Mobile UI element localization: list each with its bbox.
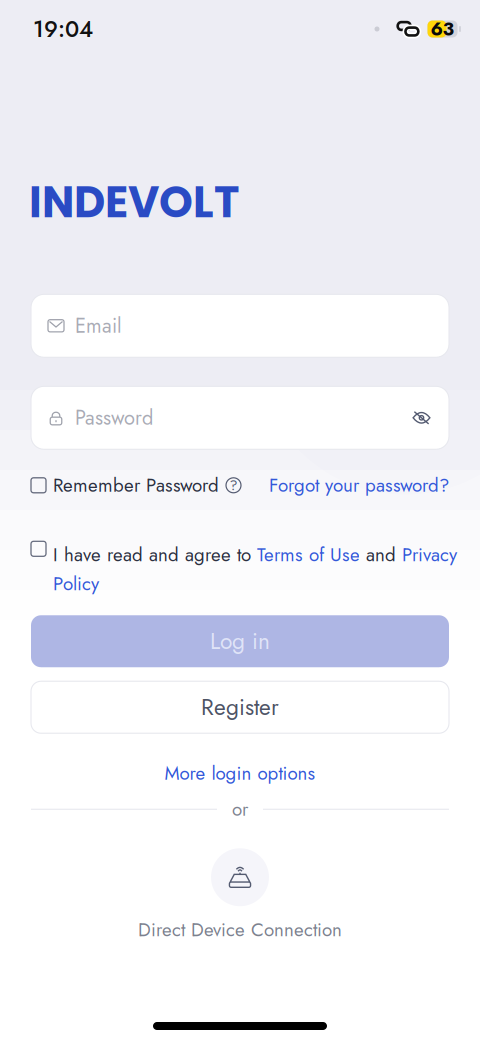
staticText: 19:04 <box>33 13 93 45</box>
staticText: Direct Device Connection <box>138 916 342 943</box>
staticText: 63 <box>430 15 454 42</box>
staticText: Password <box>75 403 153 432</box>
staticText: I have read and agree to Terms of Use an… <box>53 541 457 568</box>
staticText: or <box>232 796 248 823</box>
button[interactable]: Direct Device Connection <box>0 848 480 943</box>
staticText: Register <box>201 691 279 724</box>
button[interactable]: Remember Password <box>31 474 241 496</box>
staticText: More login options <box>164 760 315 787</box>
staticText: Log in <box>210 625 270 658</box>
button[interactable]: Log in <box>31 615 449 667</box>
button[interactable]: More login options <box>0 761 480 785</box>
staticText: Email <box>75 311 122 340</box>
staticText: Forgot your password? <box>269 472 449 499</box>
staticText: Remember Password <box>53 472 219 499</box>
button[interactable]: Forgot your password? <box>269 474 449 496</box>
staticText: INDEVOLT <box>29 172 239 232</box>
staticText: Policy <box>53 570 99 597</box>
staticText: ? <box>229 475 237 496</box>
button[interactable]: Register <box>31 681 449 733</box>
